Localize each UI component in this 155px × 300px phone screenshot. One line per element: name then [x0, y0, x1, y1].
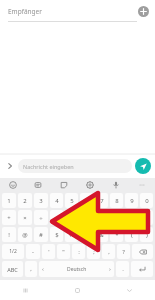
- staticText: .: [122, 265, 124, 273]
- button[interactable]: Letzte Apps: [0, 280, 51, 300]
- staticText: 5: [70, 197, 74, 205]
- button[interactable]: 1/2: [2, 244, 24, 259]
- staticText: 4: [55, 197, 59, 205]
- staticText: :: [78, 248, 80, 256]
- staticText: ;: [93, 248, 95, 256]
- button[interactable]: 5: [65, 193, 78, 208]
- staticText: ,: [30, 265, 32, 273]
- button[interactable]: ‹: [39, 261, 114, 277]
- button[interactable]: <: [110, 210, 123, 225]
- staticText: 9: [130, 197, 134, 205]
- button[interactable]: =: [50, 210, 63, 225]
- button[interactable]: +: [2, 210, 16, 225]
- staticText: !: [8, 231, 10, 239]
- staticText: 3: [39, 197, 43, 205]
- button[interactable]: 9: [125, 193, 138, 208]
- staticText: ABC: [7, 266, 18, 273]
- button[interactable]: ^: [80, 227, 93, 242]
- button[interactable]: Löschen: [132, 244, 153, 259]
- button[interactable]: (: [125, 227, 138, 242]
- button[interactable]: 0: [140, 193, 153, 208]
- staticText: 8: [115, 197, 119, 205]
- staticText: Nachricht eingeben: [23, 163, 74, 170]
- button[interactable]: GIF: [25, 178, 51, 192]
- staticText: #: [39, 231, 43, 239]
- staticText: =: [55, 214, 59, 222]
- button[interactable]: ÷: [34, 210, 48, 225]
- button[interactable]: ?: [117, 244, 130, 259]
- button[interactable]: ': [42, 244, 55, 259]
- staticText: ×: [23, 214, 27, 222]
- button[interactable]: ABC: [2, 261, 23, 277]
- staticText: -: [32, 248, 34, 256]
- button[interactable]: 7: [95, 193, 108, 208]
- button[interactable]: Startbildschirm: [51, 280, 103, 300]
- staticText: ): [146, 231, 148, 239]
- staticText: (: [131, 231, 133, 239]
- button[interactable]: &: [95, 227, 108, 242]
- staticText: &: [99, 231, 104, 239]
- button[interactable]: ,: [102, 244, 115, 259]
- button[interactable]: ×: [18, 210, 32, 225]
- staticText: @: [22, 231, 28, 239]
- button[interactable]: 6: [80, 193, 93, 208]
- button[interactable]: ): [140, 227, 153, 242]
- staticText: ': [48, 248, 50, 256]
- button[interactable]: !: [2, 227, 16, 242]
- button[interactable]: :: [72, 244, 85, 259]
- button[interactable]: *: [110, 227, 123, 242]
- button[interactable]: 4: [50, 193, 63, 208]
- button[interactable]: ;: [87, 244, 100, 259]
- button[interactable]: Kontakt hinzufügen: [138, 6, 149, 17]
- staticText: 0: [145, 197, 149, 205]
- button[interactable]: Mikrofon: [103, 178, 129, 192]
- button[interactable]: %: [65, 227, 78, 242]
- button[interactable]: 1: [2, 193, 16, 208]
- staticText: ›: [109, 265, 111, 273]
- button[interactable]: .: [116, 261, 129, 277]
- button[interactable]: >: [125, 210, 138, 225]
- button[interactable]: €: [95, 210, 108, 225]
- staticText: ?: [122, 248, 125, 256]
- staticText: ÷: [39, 214, 43, 222]
- staticText: +: [7, 214, 11, 222]
- button[interactable]: 3: [34, 193, 48, 208]
- staticText: ": [62, 248, 65, 256]
- button[interactable]: 8: [110, 193, 123, 208]
- button[interactable]: #: [34, 227, 48, 242]
- staticText: 1/2: [9, 248, 17, 255]
- button[interactable]: Senden: [135, 158, 151, 174]
- staticText: Deutsch: [67, 266, 87, 273]
- button[interactable]: Mehr Optionen: [4, 160, 16, 172]
- staticText: ,: [108, 248, 110, 256]
- button[interactable]: Emoji: [0, 178, 25, 192]
- button[interactable]: ,: [25, 261, 37, 277]
- staticText: %: [69, 231, 74, 239]
- staticText: ‹: [42, 265, 44, 273]
- button[interactable]: 2: [18, 193, 32, 208]
- button[interactable]: Sticker: [51, 178, 77, 192]
- button[interactable]: /: [65, 210, 78, 225]
- staticText: 1: [7, 197, 11, 205]
- staticText: $: [55, 231, 59, 239]
- staticText: *: [115, 231, 119, 239]
- staticText: 7: [100, 197, 104, 205]
- button[interactable]: ": [57, 244, 70, 259]
- staticText: Empfänger: [8, 7, 138, 16]
- button[interactable]: Nachricht eingeben: [18, 159, 132, 173]
- button[interactable]: ₩: [140, 210, 153, 225]
- button[interactable]: Einstellungen: [77, 178, 103, 192]
- button[interactable]: -: [26, 244, 40, 259]
- staticText: 6: [85, 197, 89, 205]
- button[interactable]: @: [18, 227, 32, 242]
- button[interactable]: $: [50, 227, 63, 242]
- button[interactable]: Eingabe: [131, 261, 153, 277]
